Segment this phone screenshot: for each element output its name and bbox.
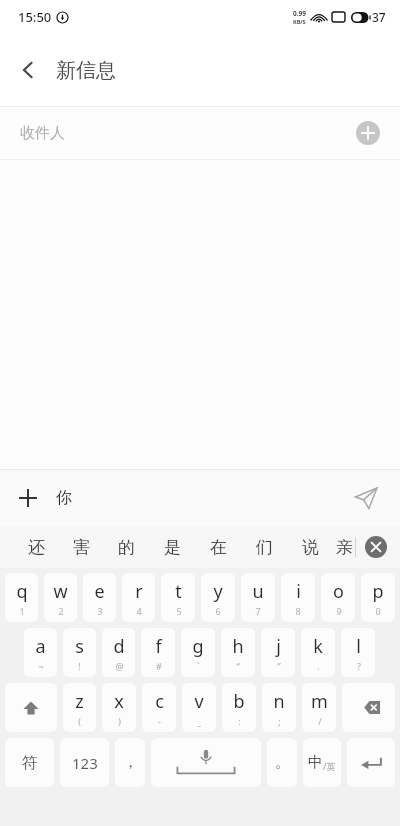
staticText: x bbox=[114, 689, 124, 714]
button[interactable]: j bbox=[261, 628, 295, 677]
staticText: e bbox=[94, 579, 105, 604]
staticText: 收件人 bbox=[20, 124, 352, 143]
staticText: o bbox=[333, 579, 344, 604]
button[interactable]: Backspace bbox=[342, 683, 395, 732]
button[interactable]: 们 bbox=[241, 526, 287, 568]
staticText: 4 bbox=[136, 605, 142, 617]
staticText: ) bbox=[118, 715, 121, 727]
button[interactable]: s bbox=[63, 628, 96, 677]
button[interactable]: x bbox=[102, 683, 136, 732]
staticText: 7 bbox=[255, 605, 261, 617]
button[interactable]: y bbox=[201, 573, 235, 622]
button[interactable]: 收件人 bbox=[0, 107, 400, 159]
staticText: f bbox=[155, 634, 162, 659]
button[interactable]: m bbox=[302, 683, 336, 732]
button[interactable]: k bbox=[301, 628, 335, 677]
button[interactable]: v bbox=[182, 683, 216, 732]
staticText: p bbox=[372, 579, 384, 604]
button[interactable]: Send bbox=[344, 476, 388, 520]
staticText: 新信息 bbox=[56, 58, 116, 83]
button[interactable]: p bbox=[361, 573, 395, 622]
staticText: 说 bbox=[302, 537, 319, 558]
button[interactable]: d bbox=[102, 628, 135, 677]
button[interactable]: Back bbox=[8, 50, 48, 90]
button[interactable]: q bbox=[5, 573, 38, 622]
button[interactable]: Close keyboard bbox=[356, 526, 396, 568]
staticText: w bbox=[53, 579, 68, 604]
button[interactable]: 在 bbox=[195, 526, 241, 568]
staticText: _ bbox=[197, 715, 201, 727]
button[interactable]: z bbox=[63, 683, 96, 732]
staticText: 9 bbox=[336, 605, 342, 617]
staticText: 5 bbox=[176, 605, 182, 617]
staticText: 3 bbox=[97, 605, 103, 617]
button[interactable]: b bbox=[222, 683, 256, 732]
button[interactable]: 123 bbox=[60, 738, 109, 787]
button[interactable]: 符 bbox=[5, 738, 54, 787]
button[interactable]: 亲 bbox=[333, 526, 355, 568]
staticText: ( bbox=[78, 715, 81, 727]
button[interactable]: o bbox=[321, 573, 355, 622]
staticText: h bbox=[232, 634, 244, 659]
staticText: “ bbox=[236, 660, 240, 672]
button[interactable]: 是 bbox=[149, 526, 195, 568]
staticText: g bbox=[192, 634, 204, 659]
staticText: 中 bbox=[308, 753, 323, 772]
button[interactable]: Enter bbox=[347, 738, 395, 787]
staticText: ` bbox=[197, 660, 200, 672]
staticText: KB/S bbox=[293, 18, 306, 25]
staticText: v bbox=[194, 689, 204, 714]
button[interactable]: r bbox=[122, 573, 155, 622]
staticText: 是 bbox=[164, 537, 181, 558]
staticText: ~ bbox=[38, 660, 44, 672]
button[interactable]: Space bbox=[151, 738, 261, 787]
staticText: 37 bbox=[372, 9, 386, 25]
staticText: 0 bbox=[375, 605, 381, 617]
staticText: ! bbox=[78, 660, 81, 672]
staticText: ; bbox=[278, 715, 281, 727]
staticText: s bbox=[75, 634, 84, 659]
staticText: l bbox=[356, 634, 361, 659]
button[interactable]: l bbox=[341, 628, 375, 677]
button[interactable]: 害 bbox=[59, 526, 104, 568]
button[interactable]: f bbox=[141, 628, 175, 677]
staticText: 亲 bbox=[336, 537, 353, 558]
staticText: /英 bbox=[323, 760, 336, 772]
button[interactable]: w bbox=[44, 573, 77, 622]
staticText: t bbox=[175, 579, 182, 604]
button[interactable]: a bbox=[24, 628, 57, 677]
button[interactable]: 。 bbox=[267, 738, 297, 787]
button[interactable]: Add recipient bbox=[352, 117, 384, 149]
button[interactable]: 说 bbox=[287, 526, 333, 568]
staticText: . bbox=[317, 660, 320, 672]
button[interactable]: c bbox=[142, 683, 176, 732]
staticText: j bbox=[276, 634, 281, 659]
staticText: 2 bbox=[58, 605, 64, 617]
button[interactable]: h bbox=[221, 628, 255, 677]
button[interactable]: n bbox=[262, 683, 296, 732]
staticText: @ bbox=[115, 660, 124, 672]
button[interactable]: ， bbox=[115, 738, 145, 787]
button[interactable]: u bbox=[241, 573, 275, 622]
button[interactable]: e bbox=[83, 573, 116, 622]
button[interactable]: Shift bbox=[5, 683, 57, 732]
button[interactable]: g bbox=[181, 628, 215, 677]
button[interactable]: 还 bbox=[14, 526, 59, 568]
staticText: 你 bbox=[56, 488, 344, 508]
staticText: - bbox=[158, 715, 161, 727]
staticText: 1 bbox=[19, 605, 25, 617]
staticText: 。 bbox=[275, 753, 290, 772]
staticText: u bbox=[252, 579, 264, 604]
staticText: m bbox=[311, 689, 328, 714]
button[interactable]: 的 bbox=[104, 526, 149, 568]
button[interactable]: 中 bbox=[303, 738, 341, 787]
staticText: i bbox=[296, 579, 301, 604]
staticText: 的 bbox=[118, 537, 135, 558]
staticText: ” bbox=[277, 660, 281, 672]
staticText: / bbox=[318, 715, 322, 727]
staticText: 们 bbox=[256, 537, 273, 558]
button[interactable]: Add attachment bbox=[8, 478, 48, 518]
staticText: r bbox=[135, 579, 143, 604]
button[interactable]: i bbox=[281, 573, 315, 622]
button[interactable]: t bbox=[161, 573, 195, 622]
